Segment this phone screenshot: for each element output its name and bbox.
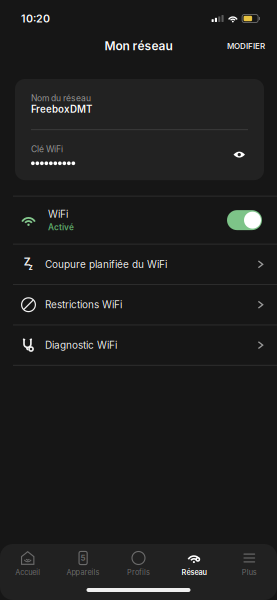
staticText: 10:20 <box>21 12 50 25</box>
staticText: MODIFIER <box>227 41 265 51</box>
button[interactable]: Diagnostic WiFi <box>0 325 277 365</box>
staticText: FreeboxDMT <box>31 103 92 115</box>
button[interactable]: Z <box>0 245 277 284</box>
button[interactable]: Plus <box>222 548 277 580</box>
staticText: Activé <box>48 222 74 232</box>
button[interactable]: Profils <box>111 548 166 580</box>
staticText: Mon réseau <box>104 39 172 53</box>
staticText: Appareils <box>67 568 100 577</box>
button[interactable]: Réseau <box>166 548 222 580</box>
staticText: Nom du réseau <box>31 93 91 103</box>
button[interactable]: Accueil <box>0 548 55 580</box>
staticText: Z <box>24 255 31 268</box>
staticText: Restrictions WiFi <box>45 299 122 311</box>
staticText: Accueil <box>15 568 40 577</box>
button[interactable]: Restrictions WiFi <box>0 285 277 324</box>
staticText: Coupure planifiée du WiFi <box>45 258 167 270</box>
staticText: WiFi <box>48 208 68 220</box>
staticText: 5 <box>81 553 86 563</box>
staticText: Réseau <box>181 568 206 577</box>
staticText: z <box>29 263 33 272</box>
staticText: Plus <box>242 568 257 577</box>
button[interactable]: 5 <box>55 548 111 580</box>
staticText: Diagnostic WiFi <box>45 339 117 351</box>
button[interactable]: Activer le WiFi <box>225 207 264 233</box>
button[interactable]: Afficher la clé WiFi <box>228 146 250 163</box>
staticText: Profils <box>127 568 150 577</box>
button[interactable]: MODIFIER <box>221 34 271 58</box>
staticText: Clé WiFi <box>31 144 63 154</box>
